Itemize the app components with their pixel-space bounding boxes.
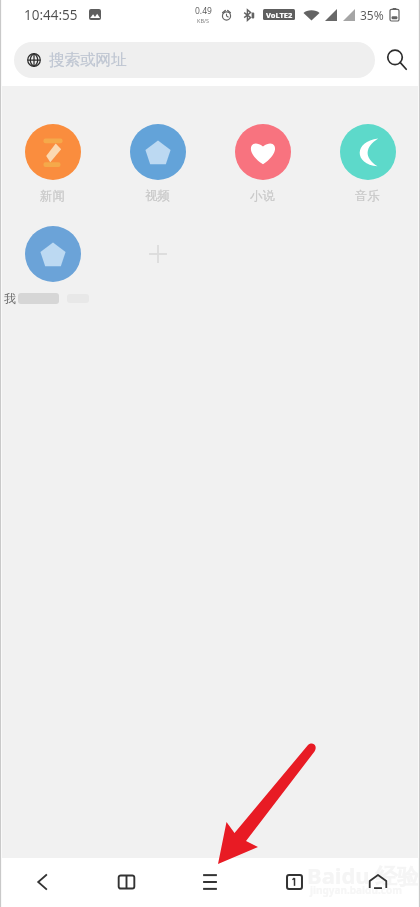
staticText: KB/S — [197, 17, 210, 24]
button[interactable]: Search — [374, 35, 420, 85]
button[interactable]: Tabs — [252, 858, 336, 907]
staticText: 搜索或网址 — [49, 50, 127, 70]
button[interactable]: Menu — [168, 858, 252, 907]
button[interactable]: 小说 — [210, 124, 315, 204]
staticText: 35% — [360, 7, 384, 23]
staticText: VoLTE2 — [266, 10, 293, 20]
button[interactable] — [0, 226, 105, 307]
staticText: 10:44:55 — [24, 6, 78, 24]
staticText: 小说 — [250, 188, 275, 204]
staticText: 音乐 — [355, 188, 380, 204]
staticText: jingyan.baidu.com — [310, 883, 402, 897]
staticText: 视频 — [145, 188, 170, 204]
button[interactable]: Home — [336, 858, 420, 907]
button[interactable]: 新闻 — [0, 124, 105, 204]
staticText: Baidu 经验 — [307, 860, 420, 890]
staticText: 我 — [4, 291, 16, 306]
staticText: 0.49 — [195, 5, 212, 17]
staticText: 新闻 — [40, 188, 65, 204]
button[interactable]: 搜索或网址 — [14, 42, 375, 78]
button[interactable]: 音乐 — [315, 124, 420, 204]
button[interactable]: Bookmarks — [84, 858, 168, 907]
button[interactable]: 视频 — [105, 124, 210, 204]
button[interactable]: Back — [0, 858, 84, 907]
